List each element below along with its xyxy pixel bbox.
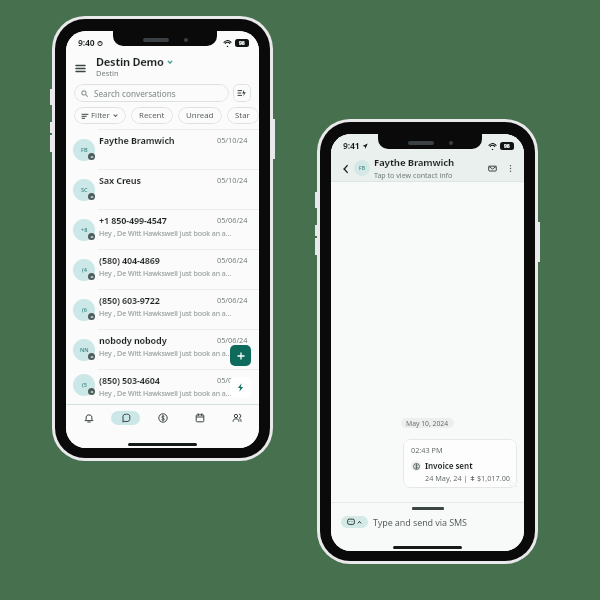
staticText: Hey , De Witt Hawkswell just book an a..… [99,268,232,278]
staticText: Recent [139,110,165,121]
staticText: (850) 603-9722 [99,294,160,306]
staticText: Hey , De Witt Hawkswell just book an a..… [99,308,232,318]
staticText: (850) 503-4604 [99,374,160,386]
button[interactable]: Email [485,161,499,175]
button[interactable]: Filter [74,107,126,124]
staticText: 24 May, 24 | [425,473,470,483]
staticText: 96 [239,40,245,47]
staticText: 96 [504,143,510,150]
staticText: SC [81,186,88,194]
button[interactable]: (5 [66,369,259,399]
staticText: Search conversations [94,88,176,99]
staticText: Sax Creus [99,174,141,186]
staticText: 05/06/24 [217,335,248,345]
button[interactable]: SC [66,169,259,209]
button[interactable]: FB [66,129,259,169]
staticText: NN [80,346,89,354]
staticText: Destin [96,68,119,78]
button[interactable]: Calendar [185,411,214,425]
staticText: 05/06/24 [217,215,248,225]
button[interactable]: Destin Demo [66,52,259,84]
button[interactable]: New conversation [230,345,251,366]
staticText: 02:43 PM [411,445,443,455]
staticText: 05/06/24 [217,255,248,265]
button[interactable]: Contacts [222,411,251,425]
button[interactable]: (6 [66,289,259,329]
button[interactable]: Search conversations [74,84,229,102]
staticText: nobody nobody [99,334,167,346]
staticText: (5 [82,381,87,389]
staticText: Filter [91,110,110,121]
button[interactable]: (4 [66,249,259,289]
staticText: Faythe Bramwich [374,156,454,169]
button[interactable]: Quick actions [230,377,251,398]
button[interactable]: Recent [131,107,173,124]
staticText: $1,017.00 [475,473,511,483]
staticText: Unread [186,110,214,121]
button[interactable]: Back [339,162,352,175]
staticText: 05/06/24 [217,295,248,305]
staticText: (4 [82,266,87,274]
button[interactable]: NN [66,329,259,369]
button[interactable]: Unread [178,107,222,124]
staticText: Hey , De Witt Hawkswell just book an a..… [99,348,232,358]
button[interactable]: Type and send via SMS [331,511,524,533]
staticText: (580) 404-4869 [99,254,160,266]
staticText: Starred [235,110,251,121]
button[interactable]: Messages [111,411,140,425]
staticText: FB [81,146,88,154]
staticText: Hey , De Witt Hawkswell just book an a..… [99,228,232,238]
button[interactable]: Notifications [74,411,103,425]
staticText: Hey , De Witt Hawkswell just book an a..… [99,388,232,398]
staticText: 05/10/24 [217,135,248,145]
staticText: 9:40 [78,37,95,49]
button[interactable]: AI assist [233,84,251,102]
staticText: 05/06/24 [217,375,248,385]
staticText: 05/10/24 [217,175,248,185]
staticText: +8 [81,226,88,234]
staticText: Destin Demo [96,54,164,69]
staticText: FB [359,165,365,172]
staticText: (6 [82,306,87,314]
button[interactable]: Payments [148,411,177,425]
staticText: Invoice sent [425,460,473,471]
staticText: Tap to view contact info [374,170,453,180]
button[interactable]: More options [505,163,516,174]
staticText: Type and send via SMS [373,516,467,528]
staticText: Faythe Bramwich [99,134,175,146]
button[interactable]: Starred [227,107,259,124]
staticText: +1 850-499-4547 [99,214,167,226]
staticText: May 10, 2024 [406,419,449,428]
button[interactable]: +8 [66,209,259,249]
staticText: 9:41 [343,140,360,152]
